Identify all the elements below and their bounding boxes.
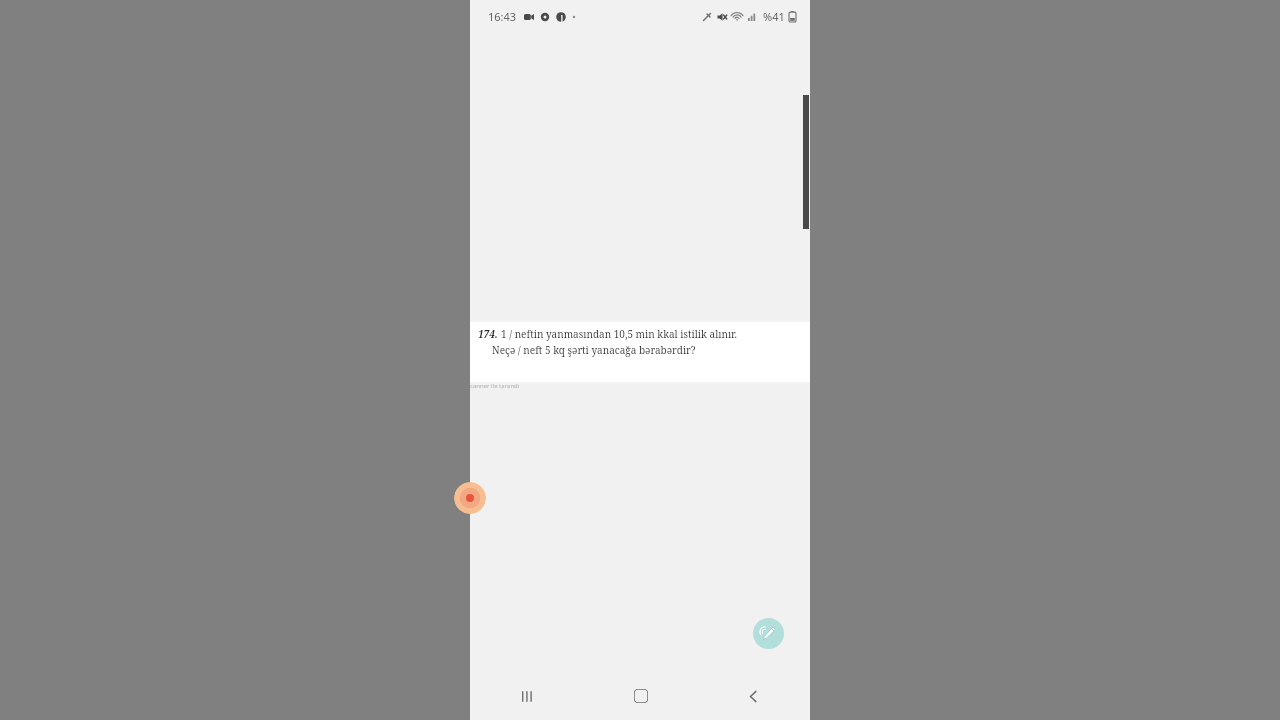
button[interactable]: Edit [753, 618, 784, 649]
staticText: 174. [478, 327, 498, 341]
staticText: 1 / neftin yanmasından 10,5 min kkal ist… [501, 327, 737, 341]
staticText: canner ile tarandı [470, 382, 520, 390]
button[interactable]: Back [697, 672, 810, 720]
button[interactable]: 174. [470, 322, 810, 382]
staticText: Neçə / neft 5 kq şərti yanacağa bərabərd… [492, 343, 696, 357]
button[interactable]: Recording indicator [454, 482, 486, 514]
staticText: %41 [763, 9, 785, 24]
staticText: 16:43 [488, 9, 517, 24]
button[interactable]: Recent apps [470, 672, 584, 720]
button[interactable]: Home [584, 672, 697, 720]
